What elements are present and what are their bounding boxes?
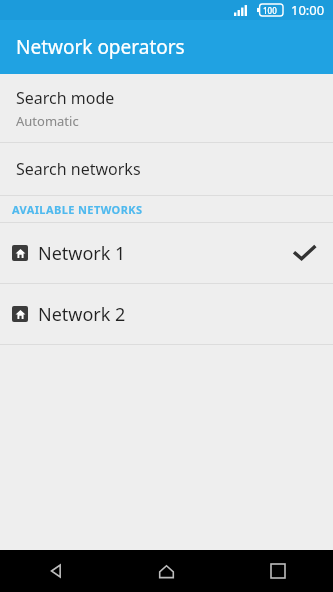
staticText: Search networks — [16, 158, 141, 180]
staticText: Search mode — [16, 87, 115, 109]
staticText: Network 2 — [38, 302, 126, 327]
button[interactable]: Home — [111, 550, 222, 592]
staticText: AVAILABLE NETWORKS — [12, 202, 143, 217]
button[interactable]: Search mode — [0, 74, 333, 142]
staticText: Network operators — [16, 34, 185, 60]
staticText: Network 1 — [38, 241, 126, 266]
staticText: Automatic — [16, 112, 79, 130]
button[interactable]: Back — [0, 550, 111, 592]
button[interactable]: Search networks — [0, 143, 333, 195]
staticText: 10:00 — [291, 1, 325, 19]
staticText: 100 — [263, 5, 277, 16]
button[interactable]: Recents — [222, 550, 333, 592]
button[interactable]: Network 1 — [0, 223, 333, 283]
button[interactable]: Network 2 — [0, 284, 333, 344]
